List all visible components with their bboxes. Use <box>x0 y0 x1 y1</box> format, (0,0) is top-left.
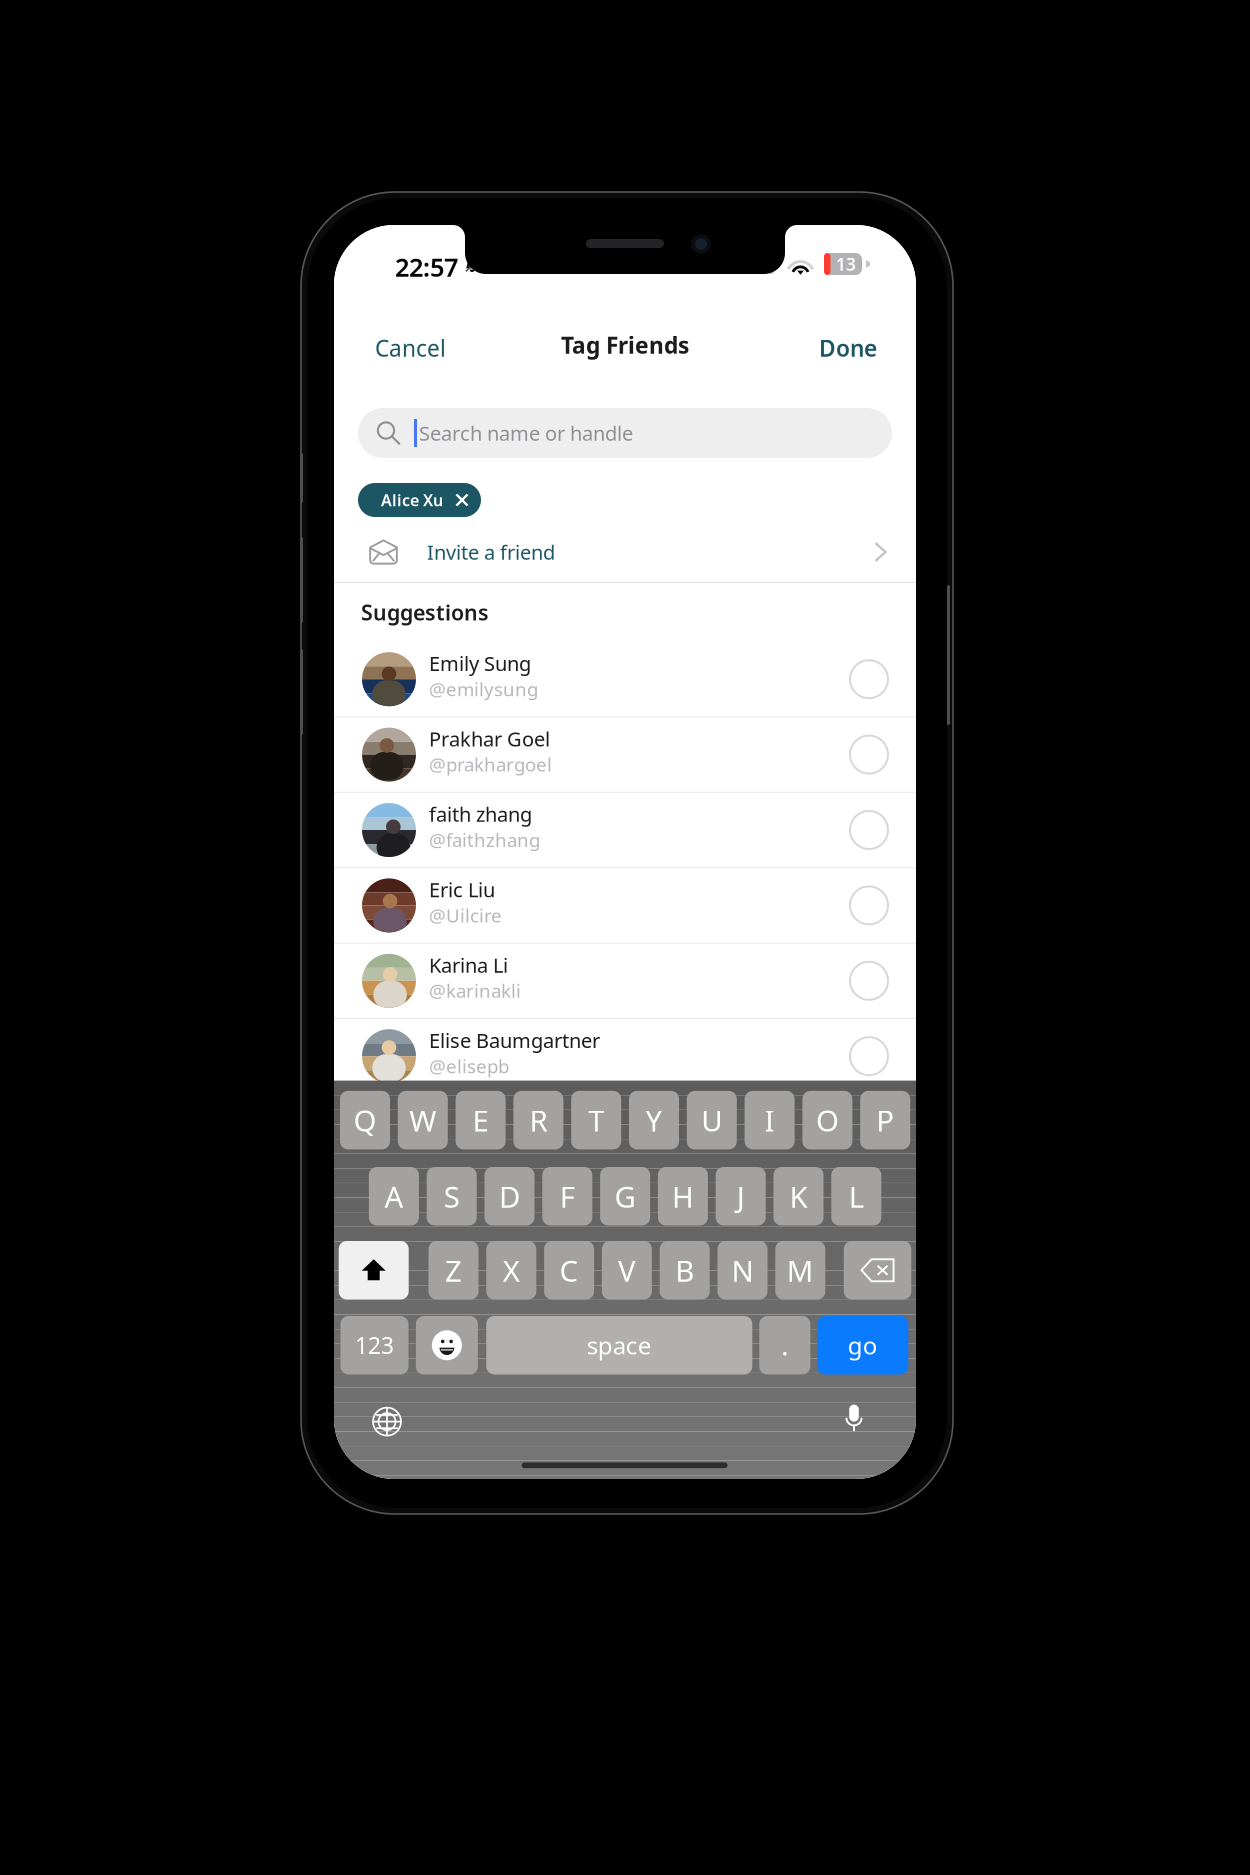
staticText: Elise Baumgartner <box>429 1027 600 1054</box>
staticText: T <box>588 1101 604 1140</box>
button[interactable]: B <box>660 1241 710 1299</box>
staticText: G <box>615 1177 636 1216</box>
staticText: P <box>876 1101 894 1140</box>
button[interactable]: P <box>860 1091 910 1149</box>
staticText: B <box>675 1251 694 1290</box>
button[interactable]: Q <box>340 1091 390 1149</box>
button[interactable]: U <box>687 1091 737 1149</box>
staticText: 13 <box>836 252 856 275</box>
staticText: X <box>503 1251 520 1290</box>
staticText: space <box>587 1329 652 1361</box>
staticText: F <box>560 1177 575 1216</box>
staticText: E <box>473 1101 489 1140</box>
staticText: R <box>529 1101 547 1140</box>
staticText: Karina Li <box>429 952 508 978</box>
button[interactable]: Switch keyboard <box>362 1397 412 1447</box>
button[interactable]: Y <box>629 1091 679 1149</box>
staticText: N <box>731 1251 753 1290</box>
button[interactable]: space <box>486 1316 752 1374</box>
button[interactable]: M <box>775 1241 825 1299</box>
button[interactable]: Cancel <box>368 323 453 373</box>
button[interactable]: S <box>427 1167 477 1225</box>
staticText: Cancel <box>375 333 446 363</box>
button[interactable]: Karina Li <box>334 944 916 1019</box>
staticText: @prakhargoel <box>429 752 552 777</box>
staticText: Eric Liu <box>429 876 495 903</box>
button[interactable]: D <box>484 1167 534 1225</box>
staticText: O <box>816 1101 839 1140</box>
staticText: faith zhang <box>429 801 532 827</box>
button[interactable]: C <box>544 1241 594 1299</box>
staticText: K <box>789 1177 807 1216</box>
button[interactable]: Shift <box>339 1241 409 1299</box>
button[interactable]: H <box>658 1167 708 1225</box>
button[interactable]: O <box>802 1091 852 1149</box>
staticText: @elisepb <box>429 1054 509 1078</box>
staticText: L <box>849 1177 864 1216</box>
button[interactable]: X <box>486 1241 536 1299</box>
button[interactable]: Prakhar Goel <box>334 717 916 793</box>
staticText: Invite a friend <box>427 539 555 565</box>
staticText: Tag Friends <box>561 330 689 360</box>
staticText: @faithzhang <box>429 827 540 852</box>
button[interactable]: Invite a friend <box>334 524 916 580</box>
staticText: S <box>444 1177 460 1216</box>
button[interactable]: F <box>542 1167 592 1225</box>
button[interactable]: Elise Baumgartner <box>334 1019 916 1094</box>
button[interactable]: Delete <box>844 1241 911 1299</box>
button[interactable]: I <box>745 1091 795 1149</box>
button[interactable]: A <box>369 1167 419 1225</box>
button[interactable]: T <box>571 1091 621 1149</box>
button[interactable]: K <box>773 1167 823 1225</box>
staticText: Z <box>445 1251 462 1290</box>
staticText: Alice Xu <box>381 489 443 511</box>
button[interactable]: W <box>398 1091 448 1149</box>
staticText: 22:57 <box>395 250 458 284</box>
button[interactable]: L <box>831 1167 881 1225</box>
button[interactable]: Search name or handle <box>358 408 892 458</box>
staticText: V <box>618 1251 636 1290</box>
button[interactable]: Done <box>812 323 884 373</box>
button[interactable]: Z <box>428 1241 478 1299</box>
staticText: W <box>409 1101 436 1140</box>
staticText: @emilysung <box>429 677 538 701</box>
button[interactable]: go <box>817 1316 908 1374</box>
button[interactable]: R <box>513 1091 563 1149</box>
staticText: Search name or handle <box>419 420 633 446</box>
staticText: Y <box>645 1101 662 1140</box>
button[interactable]: 123 <box>340 1316 408 1374</box>
staticText: go <box>848 1329 878 1361</box>
staticText: D <box>499 1177 520 1216</box>
button[interactable]: J <box>716 1167 766 1225</box>
button[interactable]: Alice Xu <box>358 483 481 517</box>
staticText: A <box>384 1177 403 1216</box>
staticText: H <box>672 1177 694 1216</box>
button[interactable]: faith zhang <box>334 793 916 868</box>
button[interactable]: G <box>600 1167 650 1225</box>
staticText: J <box>737 1177 745 1216</box>
button[interactable]: Emily Sung <box>334 642 916 717</box>
button[interactable]: . <box>759 1316 810 1374</box>
staticText: @Uilcire <box>429 903 502 928</box>
staticText: Prakhar Goel <box>429 725 550 752</box>
staticText: C <box>560 1251 579 1290</box>
staticText: Suggestions <box>361 598 489 626</box>
button[interactable]: E <box>456 1091 506 1149</box>
button[interactable]: Dictate <box>831 1394 877 1445</box>
staticText: . <box>781 1327 788 1363</box>
staticText: Emily Sung <box>429 650 531 677</box>
button[interactable]: Eric Liu <box>334 868 916 944</box>
staticText: Q <box>353 1101 376 1140</box>
staticText: U <box>701 1101 722 1140</box>
button[interactable]: Emoji <box>416 1316 478 1374</box>
staticText: 123 <box>355 1330 394 1360</box>
staticText: M <box>787 1251 814 1290</box>
staticText: Done <box>819 333 877 363</box>
button[interactable]: N <box>717 1241 767 1299</box>
staticText: I <box>765 1101 775 1140</box>
staticText: @karinakli <box>429 978 521 1003</box>
button[interactable]: V <box>602 1241 652 1299</box>
